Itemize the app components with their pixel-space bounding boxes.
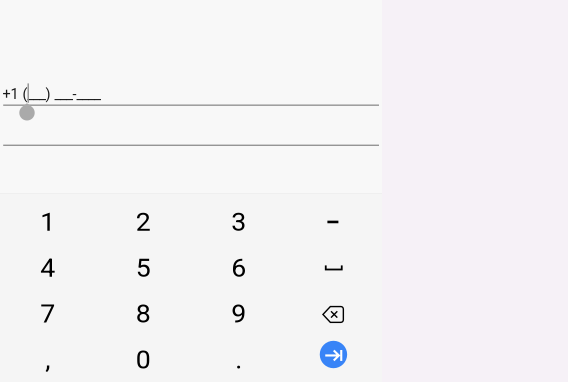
button[interactable]: 1 bbox=[0, 199, 95, 245]
button[interactable]: 5 bbox=[95, 245, 191, 291]
button[interactable]: 4 bbox=[0, 245, 95, 291]
staticText: 1 bbox=[40, 206, 55, 237]
button[interactable]: 7 bbox=[0, 290, 95, 336]
button[interactable]: , bbox=[0, 336, 95, 382]
button[interactable]: 6 bbox=[191, 245, 286, 291]
staticText: 3 bbox=[231, 206, 246, 237]
staticText: 5 bbox=[136, 252, 151, 283]
button[interactable]: 2 bbox=[95, 199, 191, 245]
button[interactable]: Dash bbox=[286, 199, 382, 245]
button[interactable]: 3 bbox=[191, 199, 286, 245]
staticText: 6 bbox=[231, 252, 246, 283]
button[interactable]: 0 bbox=[95, 336, 191, 382]
button[interactable]: 9 bbox=[191, 290, 286, 336]
staticText: 7 bbox=[40, 298, 55, 329]
staticText: 0 bbox=[136, 344, 151, 375]
button[interactable]: Phone number bbox=[0, 65, 382, 105]
staticText: 8 bbox=[136, 298, 151, 329]
button[interactable]: Delete bbox=[286, 290, 382, 336]
button[interactable]: 8 bbox=[95, 290, 191, 336]
staticText: 4 bbox=[40, 252, 55, 283]
button[interactable]: Space bbox=[286, 245, 382, 291]
staticText: 9 bbox=[231, 298, 246, 329]
button[interactable]: Next bbox=[286, 336, 382, 382]
staticText: , bbox=[45, 344, 50, 375]
staticText: 2 bbox=[136, 206, 151, 237]
button[interactable]: Text field bbox=[0, 106, 382, 146]
staticText: . bbox=[235, 344, 242, 375]
staticText: +1 (___) ___-____ bbox=[2, 86, 100, 103]
button[interactable]: . bbox=[191, 336, 286, 382]
